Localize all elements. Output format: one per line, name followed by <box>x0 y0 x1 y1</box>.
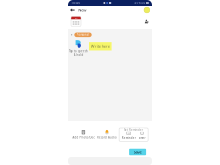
staticText: Add Photo/Doc <box>72 136 94 139</box>
staticText: Save <box>134 149 142 155</box>
button[interactable]: Share with people <box>144 14 152 29</box>
staticText: Write here <box>91 44 110 49</box>
button[interactable]: Date <box>68 14 84 29</box>
staticText: New <box>78 7 86 13</box>
staticText: Reminder <box>122 136 136 140</box>
button[interactable]: Reminder <box>121 131 136 140</box>
staticText: Record Audio <box>97 136 117 139</box>
staticText: 4G <box>141 1 145 5</box>
button[interactable]: Timer <box>138 131 146 140</box>
button[interactable]: Add Photo/Doc <box>72 130 95 139</box>
button[interactable]: Personal <box>74 32 92 37</box>
staticText: Set Reminder <box>124 128 143 132</box>
staticText: Timer <box>138 136 145 140</box>
staticText: MAR <box>74 17 77 19</box>
button[interactable]: Record Audio <box>97 130 117 139</box>
button[interactable]: Tap to speech and hold <box>68 40 89 57</box>
staticText: Tap to speech <box>69 49 88 53</box>
button[interactable]: New <box>68 6 89 14</box>
staticText: & hold <box>73 53 83 57</box>
button[interactable]: Save <box>129 149 146 155</box>
staticText: 10:45 <box>71 1 80 5</box>
staticText: Personal <box>76 33 89 36</box>
staticText: 45% <box>134 1 140 5</box>
button[interactable]: Note colour <box>144 6 152 14</box>
